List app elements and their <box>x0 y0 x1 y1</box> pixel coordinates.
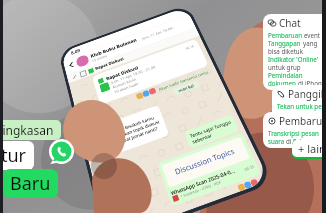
staticText: sebentar <box>191 132 213 145</box>
staticText: 08.35 <box>243 163 255 172</box>
staticText: di panggilan video <box>277 110 326 118</box>
button[interactable]: Fitur <box>0 141 34 170</box>
staticText: Panggilan <box>288 87 326 101</box>
staticText: Rumah Kevin <box>112 77 137 90</box>
button[interactable]: Discussion Topics <box>156 131 261 206</box>
other: Pinned <box>71 74 78 80</box>
button[interactable]: mari ke! <box>172 80 200 96</box>
button[interactable]: Ringkasan <box>0 120 61 140</box>
button[interactable]: Pembaruan <box>263 112 326 148</box>
staticText: di iPhone <box>298 79 326 87</box>
button[interactable]: WhatsApp <box>49 139 74 164</box>
staticText: di Saluran <box>286 137 316 145</box>
staticText: Tentu saja! Tunggu <box>189 118 232 139</box>
button[interactable]: Baru <box>3 169 58 198</box>
button[interactable]: Tentu saja! Tunggu <box>184 114 240 149</box>
staticText: Chat <box>279 16 301 30</box>
staticText: Tekan untuk perb <box>277 102 326 110</box>
staticText: 1 halaman - 47KB - PDF <box>179 179 223 199</box>
staticText: untuk rapat Jumat nanti? <box>105 125 159 150</box>
staticText: Discussion Topics <box>173 146 237 178</box>
staticText: 16.18 <box>184 44 195 51</box>
staticText: dokumen <box>268 79 298 87</box>
staticText: 10 akan hadir <box>113 81 140 95</box>
staticText: mengirimkan topik diskusi <box>103 118 161 144</box>
staticText: Pembaruan <box>279 114 326 128</box>
staticText: Indikator 'Online' <box>268 55 319 63</box>
staticText: Rapat Diskusi <box>94 56 125 71</box>
button[interactable]: + lainnya <box>292 140 326 157</box>
staticText: 8.09 <box>70 47 81 55</box>
staticText: Pembaruan <box>268 31 304 39</box>
staticText: Fitur <box>0 143 27 168</box>
staticText: Ringkasan <box>0 122 54 138</box>
staticText: Baru <box>10 171 51 196</box>
staticText: Akan hadir bersama tamu <box>158 69 209 92</box>
staticText: Tanggapan <box>268 39 303 47</box>
staticText: 15 online <box>91 54 108 63</box>
staticText: bisa diketuk <box>268 47 304 55</box>
staticText: event <box>304 31 321 39</box>
staticText: Transkripsi pesan <box>268 129 319 137</box>
staticText: suara <box>268 137 286 145</box>
staticText: untuk grup <box>268 63 301 71</box>
button[interactable]: Panggilan <box>272 85 326 121</box>
staticText: yang <box>303 39 318 47</box>
staticText: Klub Buku Bulanan <box>89 37 138 59</box>
staticText: + lainnya <box>298 141 326 156</box>
staticText: @Erin Hai! Bisakah kamu <box>102 114 155 138</box>
staticText: Rapat Diskusi <box>105 64 139 81</box>
button[interactable]: Back <box>66 15 192 73</box>
staticText: Jum, 11 Apr, 19.00... <box>141 25 176 41</box>
button[interactable]: Rapat Diskusi <box>90 38 209 105</box>
staticText: 👍🔥❤ <box>106 144 123 154</box>
button[interactable]: Chat <box>263 14 326 90</box>
staticText: WhatsApp Scan 2025-04-0... <box>170 167 236 196</box>
staticText: Jum, 11 Apr, 19.00 - 21.00 <box>110 64 157 85</box>
staticText: Pemindaian <box>268 71 303 79</box>
other: Back <box>68 62 75 68</box>
staticText: mari ke! <box>177 82 195 93</box>
